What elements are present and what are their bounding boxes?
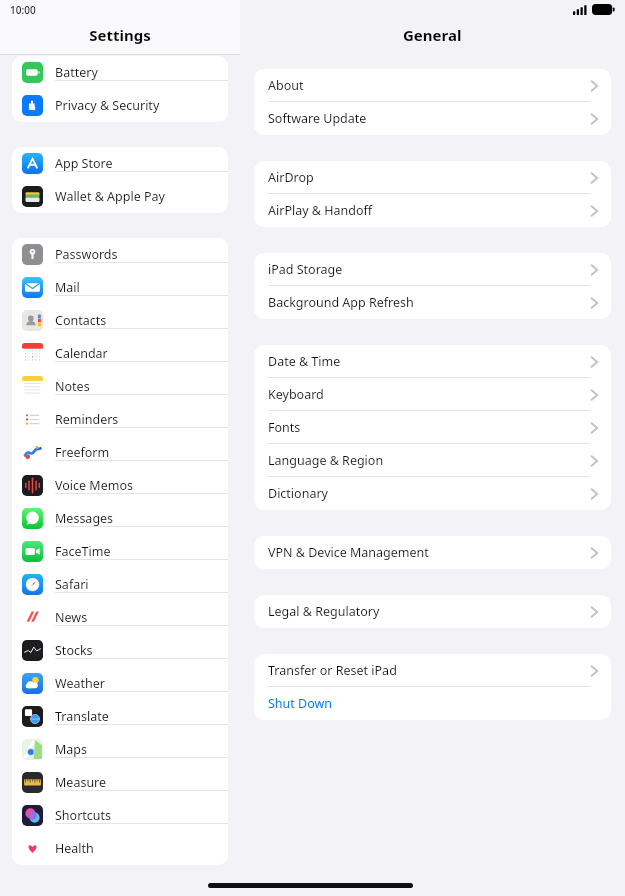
button[interactable]: Reminders <box>12 403 228 436</box>
button[interactable]: Language & Region <box>254 444 611 477</box>
staticText: AirDrop <box>268 169 314 186</box>
button[interactable]: Safari <box>12 568 228 601</box>
staticText: 10:00 <box>10 3 36 17</box>
button[interactable]: Passwords <box>12 238 228 271</box>
button[interactable]: Freeform <box>12 436 228 469</box>
staticText: Measure <box>55 774 107 791</box>
staticText: Background App Refresh <box>268 294 414 311</box>
other: Home indicator <box>208 883 413 888</box>
button[interactable]: Mail <box>12 271 228 304</box>
button[interactable]: Software Update <box>254 102 611 135</box>
staticText: App Store <box>55 155 113 172</box>
staticText: Fonts <box>268 419 301 436</box>
staticText: Safari <box>55 576 89 593</box>
button[interactable]: Keyboard <box>254 378 611 411</box>
button[interactable]: Dictionary <box>254 477 611 510</box>
staticText: Transfer or Reset iPad <box>268 662 397 679</box>
button[interactable]: News <box>12 601 228 634</box>
button[interactable]: Battery <box>12 56 228 89</box>
staticText: General <box>403 25 462 45</box>
staticText: News <box>55 609 88 626</box>
staticText: Freeform <box>55 444 110 461</box>
button[interactable]: FaceTime <box>12 535 228 568</box>
staticText: Calendar <box>55 345 108 362</box>
button[interactable]: Measure <box>12 766 228 799</box>
staticText: Dictionary <box>268 485 328 502</box>
button[interactable]: Shortcuts <box>12 799 228 832</box>
staticText: Reminders <box>55 411 119 428</box>
button[interactable]: iPad Storage <box>254 253 611 286</box>
button[interactable]: AirPlay & Handoff <box>254 194 611 227</box>
button[interactable]: About <box>254 69 611 102</box>
button[interactable]: Legal & Regulatory <box>254 595 611 628</box>
button[interactable]: Shut Down <box>254 687 611 720</box>
button[interactable]: Notes <box>12 370 228 403</box>
button[interactable]: Transfer or Reset iPad <box>254 654 611 687</box>
staticText: Notes <box>55 378 90 395</box>
staticText: Privacy & Security <box>55 97 160 114</box>
button[interactable]: Background App Refresh <box>254 286 611 319</box>
button[interactable]: Privacy & Security <box>12 89 228 122</box>
button[interactable]: Health <box>12 832 228 865</box>
staticText: Wallet & Apple Pay <box>55 188 165 205</box>
staticText: Settings <box>89 25 151 45</box>
staticText: Legal & Regulatory <box>268 603 380 620</box>
button[interactable]: Weather <box>12 667 228 700</box>
staticText: Mail <box>55 279 80 296</box>
button[interactable]: App Store <box>12 147 228 180</box>
staticText: Translate <box>55 708 109 725</box>
staticText: Messages <box>55 510 114 527</box>
staticText: Passwords <box>55 246 118 263</box>
staticText: Date & Time <box>268 353 341 370</box>
staticText: Contacts <box>55 312 107 329</box>
button[interactable]: VPN & Device Management <box>254 536 611 569</box>
staticText: Weather <box>55 675 105 692</box>
staticText: iPad Storage <box>268 261 343 278</box>
button[interactable]: Stocks <box>12 634 228 667</box>
staticText: AirPlay & Handoff <box>268 202 373 219</box>
button[interactable]: Translate <box>12 700 228 733</box>
staticText: Maps <box>55 741 88 758</box>
button[interactable]: Calendar <box>12 337 228 370</box>
staticText: VPN & Device Management <box>268 544 429 561</box>
staticText: About <box>268 77 304 94</box>
button[interactable]: Fonts <box>254 411 611 444</box>
button[interactable]: Voice Memos <box>12 469 228 502</box>
staticText: Battery <box>55 64 98 81</box>
staticText: Language & Region <box>268 452 384 469</box>
button[interactable]: Wallet & Apple Pay <box>12 180 228 213</box>
staticText: Software Update <box>268 110 367 127</box>
button[interactable]: Date & Time <box>254 345 611 378</box>
button[interactable]: Contacts <box>12 304 228 337</box>
staticText: Shut Down <box>268 695 333 712</box>
staticText: Voice Memos <box>55 477 133 494</box>
staticText: Health <box>55 840 94 857</box>
staticText: Shortcuts <box>55 807 112 824</box>
button[interactable]: Maps <box>12 733 228 766</box>
button[interactable]: Messages <box>12 502 228 535</box>
button[interactable]: AirDrop <box>254 161 611 194</box>
staticText: FaceTime <box>55 543 111 560</box>
staticText: Keyboard <box>268 386 324 403</box>
staticText: Stocks <box>55 642 93 659</box>
